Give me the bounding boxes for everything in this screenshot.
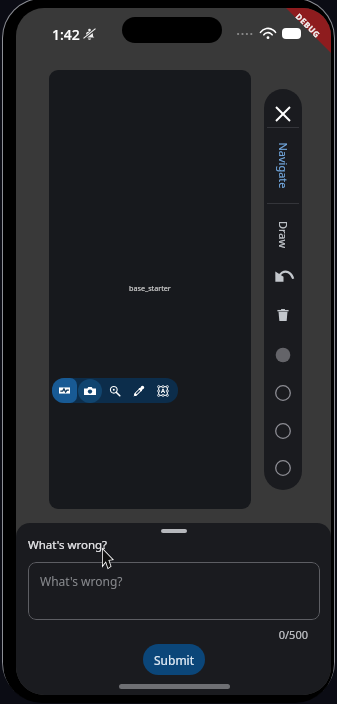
- staticText: What's wrong?: [40, 573, 123, 589]
- staticText: 1:42: [52, 25, 80, 44]
- button[interactable]: Brush size: [264, 382, 302, 404]
- staticText: 0/500: [16, 627, 308, 642]
- button[interactable]: Submit: [143, 644, 205, 675]
- button[interactable]: Brush size: [264, 420, 302, 442]
- button[interactable]: Zoom: [103, 378, 127, 403]
- button[interactable]: Draw: [264, 203, 302, 265]
- button[interactable]: Color picker: [127, 378, 151, 403]
- button[interactable]: Brush size: [264, 344, 302, 366]
- button[interactable]: Inspector: [52, 378, 77, 403]
- staticText: DEBUG: [294, 11, 323, 40]
- staticText: What's wrong?: [28, 537, 108, 553]
- button[interactable]: Screenshot: [78, 379, 102, 403]
- staticText: Draw: [275, 199, 290, 269]
- button[interactable]: What's wrong?: [28, 562, 320, 620]
- staticText: Submit: [154, 652, 195, 668]
- button[interactable]: Brush size: [264, 457, 302, 479]
- button[interactable]: Delete: [264, 300, 302, 330]
- staticText: base_starter: [129, 283, 171, 293]
- button[interactable]: Text select: [151, 378, 175, 403]
- staticText: Navigate: [275, 120, 290, 210]
- button[interactable]: Close: [264, 99, 302, 129]
- button[interactable]: Navigate: [264, 127, 302, 203]
- button[interactable]: Undo: [264, 261, 302, 291]
